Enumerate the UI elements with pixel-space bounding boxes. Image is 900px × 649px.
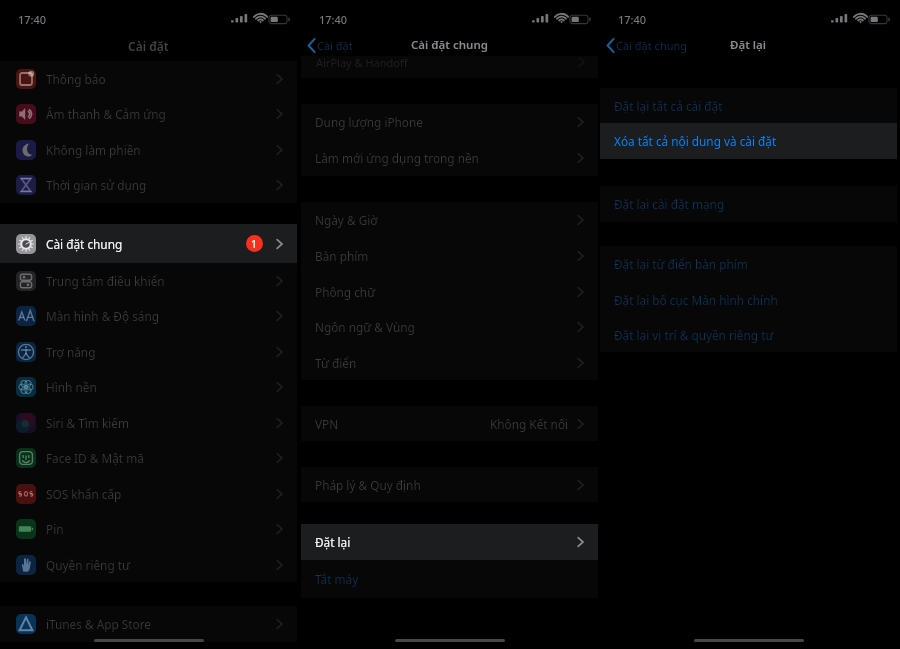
- staticText: 17:40: [18, 12, 47, 27]
- other: Back: [307, 38, 316, 53]
- button[interactable]: Siri & Tìm kiếm: [0, 405, 297, 440]
- staticText: VPN: [315, 416, 339, 432]
- staticText: Cài đặt chung: [616, 38, 688, 53]
- button[interactable]: Quyền riêng tư: [0, 547, 297, 582]
- button[interactable]: Từ điển: [301, 345, 598, 380]
- button[interactable]: Không làm phiền: [0, 132, 297, 167]
- button[interactable]: iTunes & App Store: [0, 606, 297, 642]
- staticText: 17:40: [618, 12, 647, 27]
- button[interactable]: Back: [600, 37, 696, 54]
- staticText: Pháp lý & Quy định: [315, 477, 421, 493]
- staticText: 17:40: [319, 12, 348, 27]
- staticText: Đặt lại từ điển bàn phím: [614, 256, 748, 272]
- staticText: Trung tâm điều khiển: [46, 273, 165, 289]
- staticText: Ngày & Giờ: [315, 212, 378, 228]
- staticText: Bàn phím: [315, 248, 369, 264]
- staticText: Siri & Tìm kiếm: [46, 415, 129, 431]
- staticText: Đặt lại tất cả cài đặt: [614, 98, 723, 114]
- button[interactable]: Thời gian sử dụng: [0, 167, 297, 203]
- staticText: Đặt lại cài đặt mạng: [614, 196, 725, 212]
- button[interactable]: Âm thanh & Cảm ứng: [0, 96, 297, 132]
- button[interactable]: VPN: [301, 406, 598, 441]
- staticText: Trợ năng: [46, 344, 96, 360]
- button[interactable]: Đặt lại tất cả cài đặt: [600, 88, 897, 123]
- button[interactable]: AirPlay & Handoff: [301, 51, 598, 73]
- staticText: Cài đặt chung: [46, 236, 123, 252]
- staticText: Đặt lại bố cục Màn hình chính: [614, 292, 778, 308]
- button[interactable]: Trợ năng: [0, 334, 297, 369]
- staticText: Cài đặt: [128, 38, 169, 54]
- staticText: Không Kết nối: [490, 416, 569, 432]
- button[interactable]: Back: [301, 37, 361, 54]
- staticText: AirPlay & Handoff: [316, 55, 408, 70]
- button[interactable]: Cài đặt chung: [0, 224, 297, 263]
- button[interactable]: Đặt lại từ điển bàn phím: [600, 246, 897, 282]
- button[interactable]: Đặt lại vị trí & quyền riêng tư: [600, 318, 897, 352]
- staticText: Làm mới ứng dụng trong nền: [315, 150, 479, 166]
- staticText: Đặt lại: [315, 534, 351, 550]
- button[interactable]: Phông chữ: [301, 274, 598, 309]
- button[interactable]: Đặt lại bố cục Màn hình chính: [600, 282, 897, 318]
- button[interactable]: Face ID & Mật mã: [0, 440, 297, 476]
- button[interactable]: Trung tâm điều khiển: [0, 263, 297, 298]
- staticText: Thời gian sử dụng: [46, 177, 147, 193]
- button[interactable]: Pin: [0, 511, 297, 547]
- staticText: Hình nền: [46, 379, 97, 395]
- staticText: Âm thanh & Cảm ứng: [46, 106, 166, 122]
- staticText: Đặt lại: [730, 37, 767, 53]
- staticText: Xóa tất cả nội dung và cài đặt: [614, 133, 777, 149]
- staticText: SOS khẩn cấp: [46, 486, 122, 502]
- button[interactable]: Ngôn ngữ & Vùng: [301, 309, 598, 345]
- staticText: Ngôn ngữ & Vùng: [315, 319, 415, 335]
- button[interactable]: Xóa tất cả nội dung và cài đặt: [600, 123, 897, 159]
- button[interactable]: Ngày & Giờ: [301, 202, 598, 238]
- staticText: Pin: [46, 521, 64, 537]
- staticText: Màn hình & Độ sáng: [46, 308, 159, 324]
- staticText: Dung lượng iPhone: [315, 114, 423, 130]
- staticText: Tắt máy: [315, 571, 359, 587]
- staticText: Từ điển: [315, 355, 357, 371]
- staticText: 1: [251, 237, 258, 251]
- staticText: Quyền riêng tư: [46, 557, 130, 573]
- button[interactable]: Pháp lý & Quy định: [301, 467, 598, 502]
- button[interactable]: Màn hình & Độ sáng: [0, 298, 297, 334]
- button[interactable]: SOS khẩn cấp: [0, 476, 297, 511]
- button[interactable]: Đặt lại: [301, 524, 598, 560]
- staticText: Cài đặt chung: [411, 37, 488, 53]
- button[interactable]: Dung lượng iPhone: [301, 104, 598, 140]
- button[interactable]: Bàn phím: [301, 238, 598, 274]
- staticText: Không làm phiền: [46, 142, 141, 158]
- other: Back: [606, 38, 615, 53]
- button[interactable]: Hình nền: [0, 369, 297, 405]
- button[interactable]: Thông báo: [0, 61, 297, 96]
- staticText: iTunes & App Store: [46, 616, 151, 632]
- staticText: Đặt lại vị trí & quyền riêng tư: [614, 327, 774, 343]
- staticText: Face ID & Mật mã: [46, 450, 144, 466]
- button[interactable]: Đặt lại cài đặt mạng: [600, 186, 897, 222]
- button[interactable]: Làm mới ứng dụng trong nền: [301, 140, 598, 176]
- button[interactable]: Tắt máy: [301, 560, 598, 598]
- staticText: Phông chữ: [315, 284, 376, 300]
- staticText: Thông báo: [46, 71, 106, 87]
- staticText: Cài đặt: [317, 38, 353, 53]
